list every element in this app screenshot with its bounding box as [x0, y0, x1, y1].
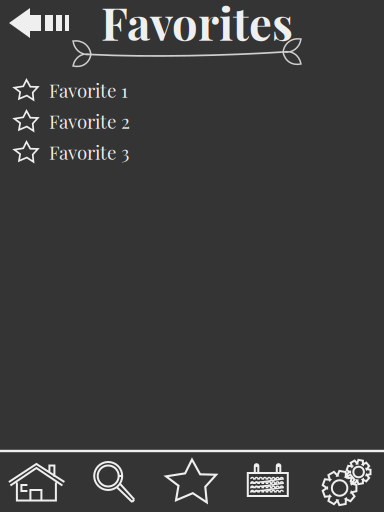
- button[interactable]: Settings: [307, 453, 384, 511]
- button[interactable]: Favorite 1: [0, 74, 384, 105]
- button[interactable]: Favorite 2: [0, 105, 384, 136]
- staticText: Favorite 2: [49, 109, 130, 133]
- button[interactable]: Search: [77, 453, 154, 511]
- staticText: Favorites: [101, 0, 293, 52]
- button[interactable]: Favorite 3: [0, 136, 384, 167]
- staticText: Favorite 1: [49, 78, 128, 102]
- staticText: Favorite 3: [49, 140, 129, 164]
- button[interactable]: Calendar: [230, 453, 307, 511]
- button[interactable]: Favorites: [154, 453, 230, 511]
- button[interactable]: Back: [2, 1, 76, 44]
- button[interactable]: Home: [0, 453, 77, 511]
